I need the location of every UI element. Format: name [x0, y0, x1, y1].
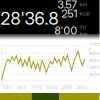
staticText: 8'00 [54, 24, 77, 37]
staticText: 28'36.8 [0, 8, 58, 29]
staticText: kcal [79, 10, 89, 17]
staticText: km [79, 1, 87, 8]
staticText: 6'00 [17, 85, 26, 90]
staticText: 10km/h [88, 42, 100, 51]
staticText: 16'00 [46, 85, 57, 90]
staticText: 2km/h [88, 72, 99, 77]
staticText: 26'00 [76, 85, 87, 90]
staticText: 21'00 [61, 85, 72, 90]
staticText: 11'00 [31, 85, 42, 90]
staticText: 分/km [79, 24, 87, 37]
staticText: 3.57 [57, 0, 77, 11]
staticText: 251 [61, 7, 77, 20]
staticText: 6km/h [88, 58, 99, 63]
staticText: 4km/h [88, 65, 100, 70]
staticText: 8km/h [88, 51, 99, 56]
staticText: 1'00 [2, 85, 11, 90]
